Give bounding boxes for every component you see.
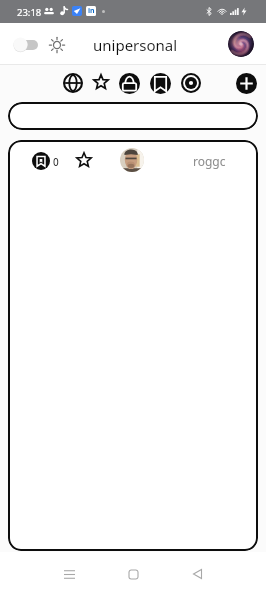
button[interactable]: Stories xyxy=(181,73,201,93)
button[interactable]: Brightness xyxy=(49,37,65,53)
button[interactable]: Public xyxy=(63,73,83,93)
staticText: in xyxy=(88,6,95,16)
staticText: 23:18 xyxy=(17,6,42,19)
staticText: 0 xyxy=(53,155,59,169)
button[interactable]: Add xyxy=(236,73,257,94)
button[interactable]: Account xyxy=(228,31,254,57)
button[interactable]: Recent apps xyxy=(54,559,84,589)
button[interactable]: Search xyxy=(8,102,258,130)
button[interactable]: Saved xyxy=(150,73,171,94)
button[interactable]: Home xyxy=(118,559,148,589)
button[interactable]: Favourite xyxy=(76,152,92,168)
button[interactable]: Private xyxy=(119,73,140,94)
button[interactable]: User photo xyxy=(120,148,144,172)
staticText: roggc xyxy=(193,153,226,169)
button[interactable]: Dark mode toggle xyxy=(13,37,38,52)
button[interactable]: Back xyxy=(182,559,212,589)
button[interactable]: Bookmarks xyxy=(32,152,50,170)
button[interactable]: Favourites xyxy=(93,74,109,90)
staticText: unipersonal xyxy=(93,35,178,55)
